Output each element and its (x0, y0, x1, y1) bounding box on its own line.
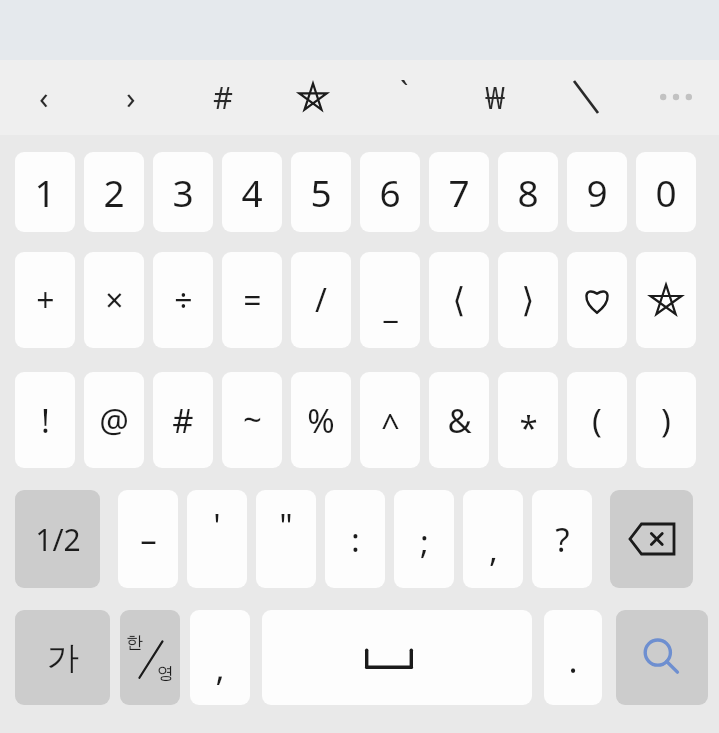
button[interactable]: Star symbol (283, 62, 343, 132)
staticText: ⟨ (452, 280, 466, 320)
button[interactable]: ‹ (14, 62, 74, 132)
staticText: ‹ (39, 76, 49, 118)
button[interactable]: / (291, 252, 351, 348)
button[interactable]: 1/2 (15, 490, 100, 588)
staticText: 1/2 (35, 519, 81, 560)
button[interactable]: % (291, 372, 351, 468)
button[interactable]: 8 (498, 152, 558, 232)
button[interactable]: * (498, 372, 558, 468)
button[interactable]: ~ (222, 372, 282, 468)
staticText: – (140, 517, 157, 562)
staticText: , (489, 527, 498, 572)
button[interactable]: Heart symbol (567, 252, 627, 348)
staticText: , (215, 645, 225, 691)
button[interactable]: 0 (636, 152, 696, 232)
staticText: ( (592, 398, 602, 443)
button[interactable]: 4 (222, 152, 282, 232)
button[interactable]: 가 (15, 610, 110, 705)
button[interactable]: @ (84, 372, 144, 468)
button[interactable]: ; (394, 490, 454, 588)
button[interactable]: _ (360, 252, 420, 348)
button[interactable]: 1 (15, 152, 75, 232)
button[interactable]: Star symbol (636, 252, 696, 348)
staticText: ! (41, 398, 50, 443)
staticText: % (307, 398, 335, 443)
button[interactable]: : (325, 490, 385, 588)
button[interactable]: Backslash (556, 62, 616, 132)
button[interactable]: ! (15, 372, 75, 468)
button[interactable]: ^ (360, 372, 420, 468)
staticText: ? (555, 517, 570, 562)
button[interactable]: Space (262, 610, 532, 705)
button[interactable]: ÷ (153, 252, 213, 348)
staticText: ^ (381, 403, 400, 448)
staticText: 3 (172, 167, 194, 217)
button[interactable]: # (193, 62, 253, 132)
staticText: & (447, 398, 472, 443)
button[interactable]: 7 (429, 152, 489, 232)
staticText: 8 (517, 167, 539, 217)
staticText: # (213, 76, 234, 118)
staticText: ' (213, 503, 221, 548)
staticText: 4 (241, 167, 263, 217)
staticText: ; (420, 519, 429, 564)
staticText: 9 (586, 167, 608, 217)
button[interactable]: 9 (567, 152, 627, 232)
button[interactable]: ⟩ (498, 252, 558, 348)
button[interactable]: Korean English toggle (120, 610, 180, 705)
button[interactable]: " (256, 490, 316, 588)
button[interactable]: More symbols (646, 62, 706, 132)
staticText: 5 (310, 167, 332, 217)
staticText: 가 (47, 638, 79, 678)
button[interactable]: 5 (291, 152, 351, 232)
button[interactable]: Search (616, 610, 708, 705)
button[interactable]: › (101, 62, 161, 132)
staticText: = (243, 278, 262, 322)
button[interactable]: . (544, 610, 602, 705)
staticText: 한 (126, 632, 143, 653)
button[interactable]: × (84, 252, 144, 348)
button[interactable]: + (15, 252, 75, 348)
button[interactable]: ' (187, 490, 247, 588)
staticText: 0 (655, 167, 677, 217)
staticText: ⟩ (521, 280, 535, 320)
staticText: . (568, 637, 578, 683)
staticText: › (126, 76, 136, 118)
staticText: _ (383, 284, 398, 328)
staticText: @ (99, 398, 129, 443)
staticText: 영 (157, 663, 174, 684)
staticText: ₩ (485, 77, 506, 118)
button[interactable]: , (190, 610, 250, 705)
staticText: * (519, 405, 538, 450)
staticText: × (105, 278, 124, 322)
staticText: + (36, 278, 55, 322)
staticText: ` (400, 72, 409, 113)
button[interactable]: ) (636, 372, 696, 468)
button[interactable]: ` (374, 62, 434, 132)
button[interactable]: 2 (84, 152, 144, 232)
staticText: 6 (379, 167, 401, 217)
staticText: ~ (243, 396, 262, 441)
button[interactable]: & (429, 372, 489, 468)
staticText: : (351, 517, 360, 562)
staticText: 2 (103, 167, 125, 217)
button[interactable]: ( (567, 372, 627, 468)
button[interactable]: ⟨ (429, 252, 489, 348)
button[interactable]: 3 (153, 152, 213, 232)
button[interactable]: Won symbol (465, 62, 525, 132)
staticText: / (315, 278, 327, 322)
staticText: 7 (448, 167, 470, 217)
button[interactable]: ? (532, 490, 592, 588)
button[interactable]: , (463, 490, 523, 588)
button[interactable]: 6 (360, 152, 420, 232)
staticText: # (172, 398, 194, 443)
staticText: " (279, 503, 293, 548)
staticText: ) (661, 398, 671, 443)
button[interactable]: # (153, 372, 213, 468)
staticText: ÷ (174, 278, 193, 322)
button[interactable]: Backspace (610, 490, 693, 588)
staticText: 1 (34, 167, 56, 217)
button[interactable]: – (118, 490, 178, 588)
button[interactable]: = (222, 252, 282, 348)
